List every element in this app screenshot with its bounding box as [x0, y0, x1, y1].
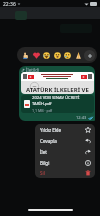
button[interactable]: Like [21, 51, 30, 60]
button[interactable]: Bilgi [35, 157, 95, 168]
button[interactable]: Pray [74, 51, 83, 60]
staticText: 2024 VDB SINAV ÜCRETİ BEKLAP [32, 95, 91, 101]
staticText: İletildi [26, 67, 40, 73]
button[interactable]: Sad [63, 51, 72, 60]
staticText: 12:43 [76, 115, 87, 120]
button[interactable]: More reactions [84, 50, 95, 61]
staticText: Sil [40, 170, 45, 176]
button[interactable]: Cevapla [35, 135, 95, 146]
staticText: 1,1 MB · pdf [32, 108, 53, 113]
button[interactable]: ATATÜRK İLKELERİ VE [21, 72, 94, 94]
staticText: Bilgi [40, 160, 50, 166]
button[interactable]: Sil [35, 168, 95, 178]
button[interactable]: Yıldız Ekle [35, 124, 95, 135]
button[interactable]: 2024 VDB SINAV ÜCRETİ BEKLAP [21, 95, 94, 113]
staticText: TARİH.pdf [32, 101, 52, 107]
staticText: 22:36 [3, 1, 16, 8]
button[interactable]: İlet [35, 146, 95, 157]
button[interactable]: Love [32, 51, 41, 60]
button[interactable]: Haha [42, 51, 51, 60]
staticText: Cevapla [40, 138, 57, 144]
staticText: ATATÜRK İLKELERİ VE [26, 86, 89, 94]
staticText: Yıldız Ekle [40, 127, 62, 133]
staticText: İlet [40, 149, 47, 155]
button[interactable]: Wow [53, 51, 62, 60]
